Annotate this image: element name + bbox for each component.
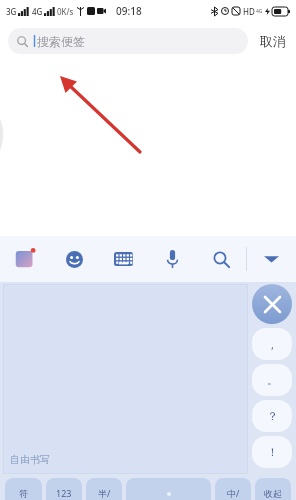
staticText: 4G xyxy=(32,6,43,17)
staticText: 自由书写 xyxy=(10,453,50,466)
button[interactable]: ？ xyxy=(252,400,292,432)
button[interactable]: Hide keyboard xyxy=(247,236,296,282)
staticText: 搜索便签 xyxy=(37,34,85,49)
button[interactable]: 取消 xyxy=(258,29,288,53)
staticText: 取消 xyxy=(260,33,286,49)
button[interactable]: Voice input xyxy=(148,236,197,282)
staticText: 0K/s xyxy=(57,6,74,17)
staticText: ？ xyxy=(267,409,278,423)
staticText: 3G xyxy=(6,6,17,17)
button[interactable]: 搜索便签 xyxy=(8,28,248,54)
staticText: 123 xyxy=(56,487,72,499)
button[interactable]: 中/ xyxy=(215,478,251,500)
staticText: ！ xyxy=(267,445,278,459)
staticText: 09:18 xyxy=(116,4,142,18)
staticText: 半/ xyxy=(98,487,111,499)
staticText: 收起 xyxy=(264,488,282,499)
button[interactable]: ！ xyxy=(252,436,292,468)
button[interactable]: 123 xyxy=(46,478,82,500)
button[interactable]: 半/ xyxy=(86,478,122,500)
button[interactable]: Emoji xyxy=(50,236,99,282)
staticText: 中/ xyxy=(227,487,240,499)
staticText: HD xyxy=(243,6,255,17)
button[interactable]: 符 xyxy=(5,478,42,500)
button[interactable]: , xyxy=(252,328,292,360)
button[interactable]: Keyboard xyxy=(99,236,148,282)
staticText: 符 xyxy=(19,488,28,499)
button[interactable]: 。 xyxy=(252,364,292,396)
button[interactable]: Space xyxy=(126,478,211,500)
button[interactable]: Sogou input xyxy=(0,236,50,282)
button[interactable]: 自由书写 xyxy=(3,284,248,474)
button[interactable]: Delete xyxy=(252,284,292,324)
staticText: 4G xyxy=(256,8,263,15)
staticText: 。 xyxy=(267,373,278,387)
staticText: , xyxy=(271,337,274,352)
button[interactable]: 收起 xyxy=(255,478,291,500)
button[interactable]: Search xyxy=(197,236,246,282)
